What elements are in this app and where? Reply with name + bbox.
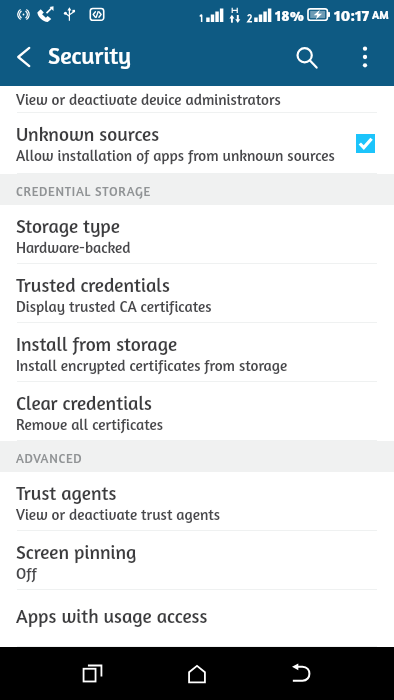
button[interactable]: Navigate up <box>6 39 42 75</box>
staticText: Allow installation of apps from unknown … <box>16 146 335 165</box>
staticText: 10:17 <box>334 5 370 24</box>
staticText: 18% <box>275 6 304 24</box>
staticText: Screen pinning <box>16 540 137 563</box>
staticText: Security <box>48 41 132 70</box>
button[interactable]: More options <box>348 40 382 74</box>
button[interactable]: Screen pinning <box>0 531 394 590</box>
staticText: Install from storage <box>16 332 178 355</box>
button[interactable]: Apps with usage access <box>0 590 394 647</box>
staticText: Install encrypted certificates from stor… <box>16 356 288 375</box>
button[interactable]: Install from storage <box>0 323 394 382</box>
button[interactable]: Unknown sources <box>0 113 394 174</box>
staticText: Remove all certificates <box>16 415 164 434</box>
staticText: AM <box>372 8 389 21</box>
staticText: CREDENTIAL STORAGE <box>16 183 151 199</box>
staticText: Trusted credentials <box>16 273 170 296</box>
button[interactable]: Back <box>274 647 330 700</box>
staticText: Hardware-backed <box>16 238 131 257</box>
button[interactable]: Clear credentials <box>0 382 394 441</box>
button[interactable]: Trusted credentials <box>0 264 394 323</box>
button[interactable]: Storage type <box>0 205 394 264</box>
button[interactable]: Search <box>289 40 323 74</box>
button[interactable]: Trust agents <box>0 472 394 531</box>
button[interactable]: Recent apps <box>64 647 120 700</box>
staticText: Off <box>16 564 37 583</box>
staticText: Apps with usage access <box>16 604 208 627</box>
button[interactable]: Home <box>169 647 225 700</box>
button[interactable]: View or deactivate device administrators <box>0 86 394 113</box>
staticText: View or deactivate device administrators <box>16 90 281 109</box>
staticText: Display trusted CA certificates <box>16 297 212 316</box>
staticText: View or deactivate trust agents <box>16 505 221 524</box>
staticText: Unknown sources <box>16 122 160 145</box>
staticText: ADVANCED <box>16 450 83 466</box>
staticText: Clear credentials <box>16 391 153 414</box>
staticText: Trust agents <box>16 481 117 504</box>
staticText: Storage type <box>16 214 120 237</box>
